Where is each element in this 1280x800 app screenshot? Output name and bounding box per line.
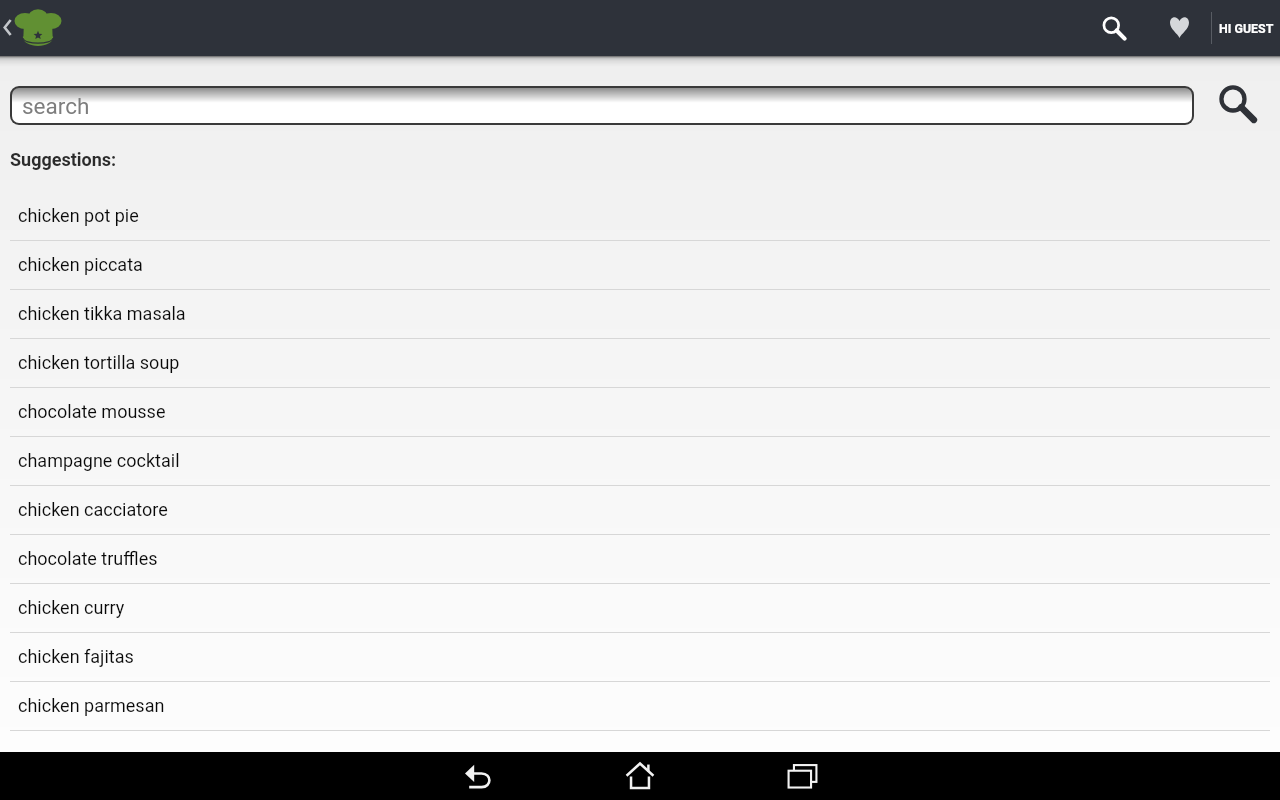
button[interactable]: Favorites [1157, 5, 1201, 49]
staticText: chocolate mousse [18, 401, 166, 422]
button[interactable]: chicken tortilla soup [0, 339, 1280, 388]
staticText: chocolate truffles [18, 548, 158, 569]
staticText: chicken fajitas [18, 646, 134, 667]
button[interactable]: Home [612, 752, 668, 800]
button[interactable]: HI GUEST [1219, 6, 1274, 50]
staticText: chicken cacciatore [18, 499, 168, 520]
staticText: search [22, 93, 90, 119]
staticText: champagne cocktail [18, 450, 180, 471]
button[interactable]: chocolate mousse [0, 388, 1280, 437]
staticText: chicken tortilla soup [18, 352, 180, 373]
button[interactable]: chicken curry [0, 584, 1280, 633]
button[interactable]: chicken pot pie [0, 192, 1280, 241]
staticText: HI GUEST [1219, 21, 1274, 36]
button[interactable]: champagne cocktail [0, 437, 1280, 486]
staticText: chicken pot pie [18, 205, 139, 226]
button[interactable]: chicken fajitas [0, 633, 1280, 682]
staticText: chicken tikka masala [18, 303, 186, 324]
button[interactable]: Search [1212, 84, 1263, 123]
button[interactable]: Back [0, 6, 16, 50]
button[interactable]: Recents [773, 752, 832, 800]
button[interactable]: chicken tikka masala [0, 290, 1280, 339]
button[interactable]: chicken parmesan [0, 682, 1280, 731]
button[interactable]: Back [451, 752, 506, 800]
button[interactable]: search [12, 88, 1192, 123]
button[interactable]: chicken piccata [0, 241, 1280, 290]
staticText: chicken piccata [18, 254, 143, 275]
button[interactable]: Search [1091, 5, 1138, 52]
staticText: chicken parmesan [18, 695, 165, 716]
button[interactable]: Home logo [14, 6, 62, 52]
staticText: chicken curry [18, 597, 125, 618]
staticText: Suggestions: [10, 149, 117, 170]
button[interactable]: chicken cacciatore [0, 486, 1280, 535]
button[interactable]: chocolate truffles [0, 535, 1280, 584]
